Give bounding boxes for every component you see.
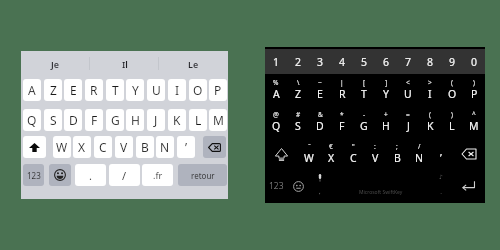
staticText: 1 (273, 55, 280, 69)
button[interactable]: N (156, 136, 174, 158)
button[interactable]: + (375, 106, 397, 138)
button[interactable]: 123 (23, 164, 44, 186)
button[interactable]: C (94, 136, 112, 158)
button[interactable]: ˜ (298, 138, 320, 170)
button[interactable]: : (364, 138, 386, 170)
staticText: = (406, 110, 410, 119)
button[interactable]: retour (178, 164, 227, 186)
staticText: R (339, 87, 346, 101)
button[interactable]: G (106, 109, 124, 131)
staticText: K (173, 112, 181, 128)
button[interactable]: 9 (441, 49, 463, 74)
button[interactable]: Je (21, 51, 90, 76)
button[interactable]: [ (353, 74, 375, 106)
staticText: . (89, 168, 92, 183)
button[interactable]: ) (441, 106, 463, 138)
button[interactable]: / (109, 164, 140, 186)
button[interactable]: M (209, 109, 227, 131)
button[interactable]: Microsoft SwiftKey (331, 170, 430, 202)
staticText: 8 (427, 55, 434, 69)
button[interactable]: V (115, 136, 133, 158)
button[interactable]: 3 (309, 49, 331, 74)
button[interactable]: O (189, 79, 207, 101)
button[interactable]: T (106, 79, 124, 101)
staticText: 123 (269, 180, 284, 192)
button[interactable]: H (126, 109, 144, 131)
button[interactable]: U (147, 79, 165, 101)
button[interactable]: ’ (430, 138, 452, 170)
staticText: 4 (339, 55, 346, 69)
button[interactable]: ♪ (430, 170, 452, 202)
button[interactable]: " (342, 138, 364, 170)
button[interactable]: ; (386, 138, 408, 170)
button[interactable]: I (168, 79, 186, 101)
button[interactable]: L (189, 109, 207, 131)
button[interactable]: W (53, 136, 71, 158)
button[interactable]: \ (287, 74, 309, 106)
button[interactable]: ( (419, 106, 441, 138)
button[interactable]: K (168, 109, 186, 131)
button[interactable]: Voice input (309, 170, 331, 202)
button[interactable]: Q (23, 109, 41, 131)
button[interactable]: - (353, 106, 375, 138)
staticText: Je (51, 58, 60, 70)
button[interactable]: Emoji (49, 164, 71, 186)
button[interactable]: E (64, 79, 82, 101)
button[interactable]: Il (90, 51, 159, 76)
button[interactable]: P (209, 79, 227, 101)
button[interactable]: 7 (397, 49, 419, 74)
button[interactable]: < (397, 74, 419, 106)
button[interactable]: R (85, 79, 103, 101)
button[interactable]: 6 (375, 49, 397, 74)
button[interactable]: = (397, 106, 419, 138)
button[interactable]: @ (265, 106, 287, 138)
staticText: , (319, 188, 321, 196)
staticText: + (384, 110, 388, 119)
button[interactable]: J (147, 109, 165, 131)
staticText: ( (451, 78, 453, 87)
button[interactable]: Enter (452, 170, 485, 202)
button[interactable]: B (136, 136, 154, 158)
button[interactable]: ’ (177, 136, 195, 158)
button[interactable]: # (287, 106, 309, 138)
button[interactable]: ) (463, 74, 485, 106)
staticText: : (374, 142, 376, 151)
button[interactable]: 4 (331, 49, 353, 74)
button[interactable]: .fr (142, 164, 173, 186)
button[interactable]: € (320, 138, 342, 170)
button[interactable]: & (309, 106, 331, 138)
button[interactable]: 0 (463, 49, 485, 74)
button[interactable]: * (331, 106, 353, 138)
button[interactable]: . (75, 164, 106, 186)
button[interactable]: Backspace (203, 136, 226, 158)
button[interactable]: Shift (265, 138, 298, 170)
staticText: Il (122, 58, 128, 70)
button[interactable]: 123 (265, 170, 287, 202)
staticText: Le (188, 58, 199, 70)
button[interactable]: S (44, 109, 62, 131)
button[interactable]: A (23, 79, 41, 101)
button[interactable]: | (331, 74, 353, 106)
staticText: O (448, 87, 457, 101)
button[interactable]: > (419, 74, 441, 106)
button[interactable]: D (64, 109, 82, 131)
button[interactable]: X (73, 136, 91, 158)
button[interactable]: Le (159, 51, 228, 76)
button[interactable]: Shift (23, 136, 46, 158)
button[interactable]: 2 (287, 49, 309, 74)
button[interactable]: 5 (353, 49, 375, 74)
button[interactable]: 8 (419, 49, 441, 74)
button[interactable]: Emoji (287, 170, 309, 202)
button[interactable]: 1 (265, 49, 287, 74)
button[interactable]: Backspace (452, 138, 485, 170)
button[interactable]: / (408, 138, 430, 170)
button[interactable]: ( (441, 74, 463, 106)
button[interactable]: F (85, 109, 103, 131)
button[interactable]: ~ (309, 74, 331, 106)
staticText: Y (383, 87, 389, 101)
button[interactable]: Z (44, 79, 62, 101)
button[interactable]: ] (375, 74, 397, 106)
button[interactable]: Y (126, 79, 144, 101)
button[interactable]: ^ (463, 106, 485, 138)
button[interactable]: % (265, 74, 287, 106)
